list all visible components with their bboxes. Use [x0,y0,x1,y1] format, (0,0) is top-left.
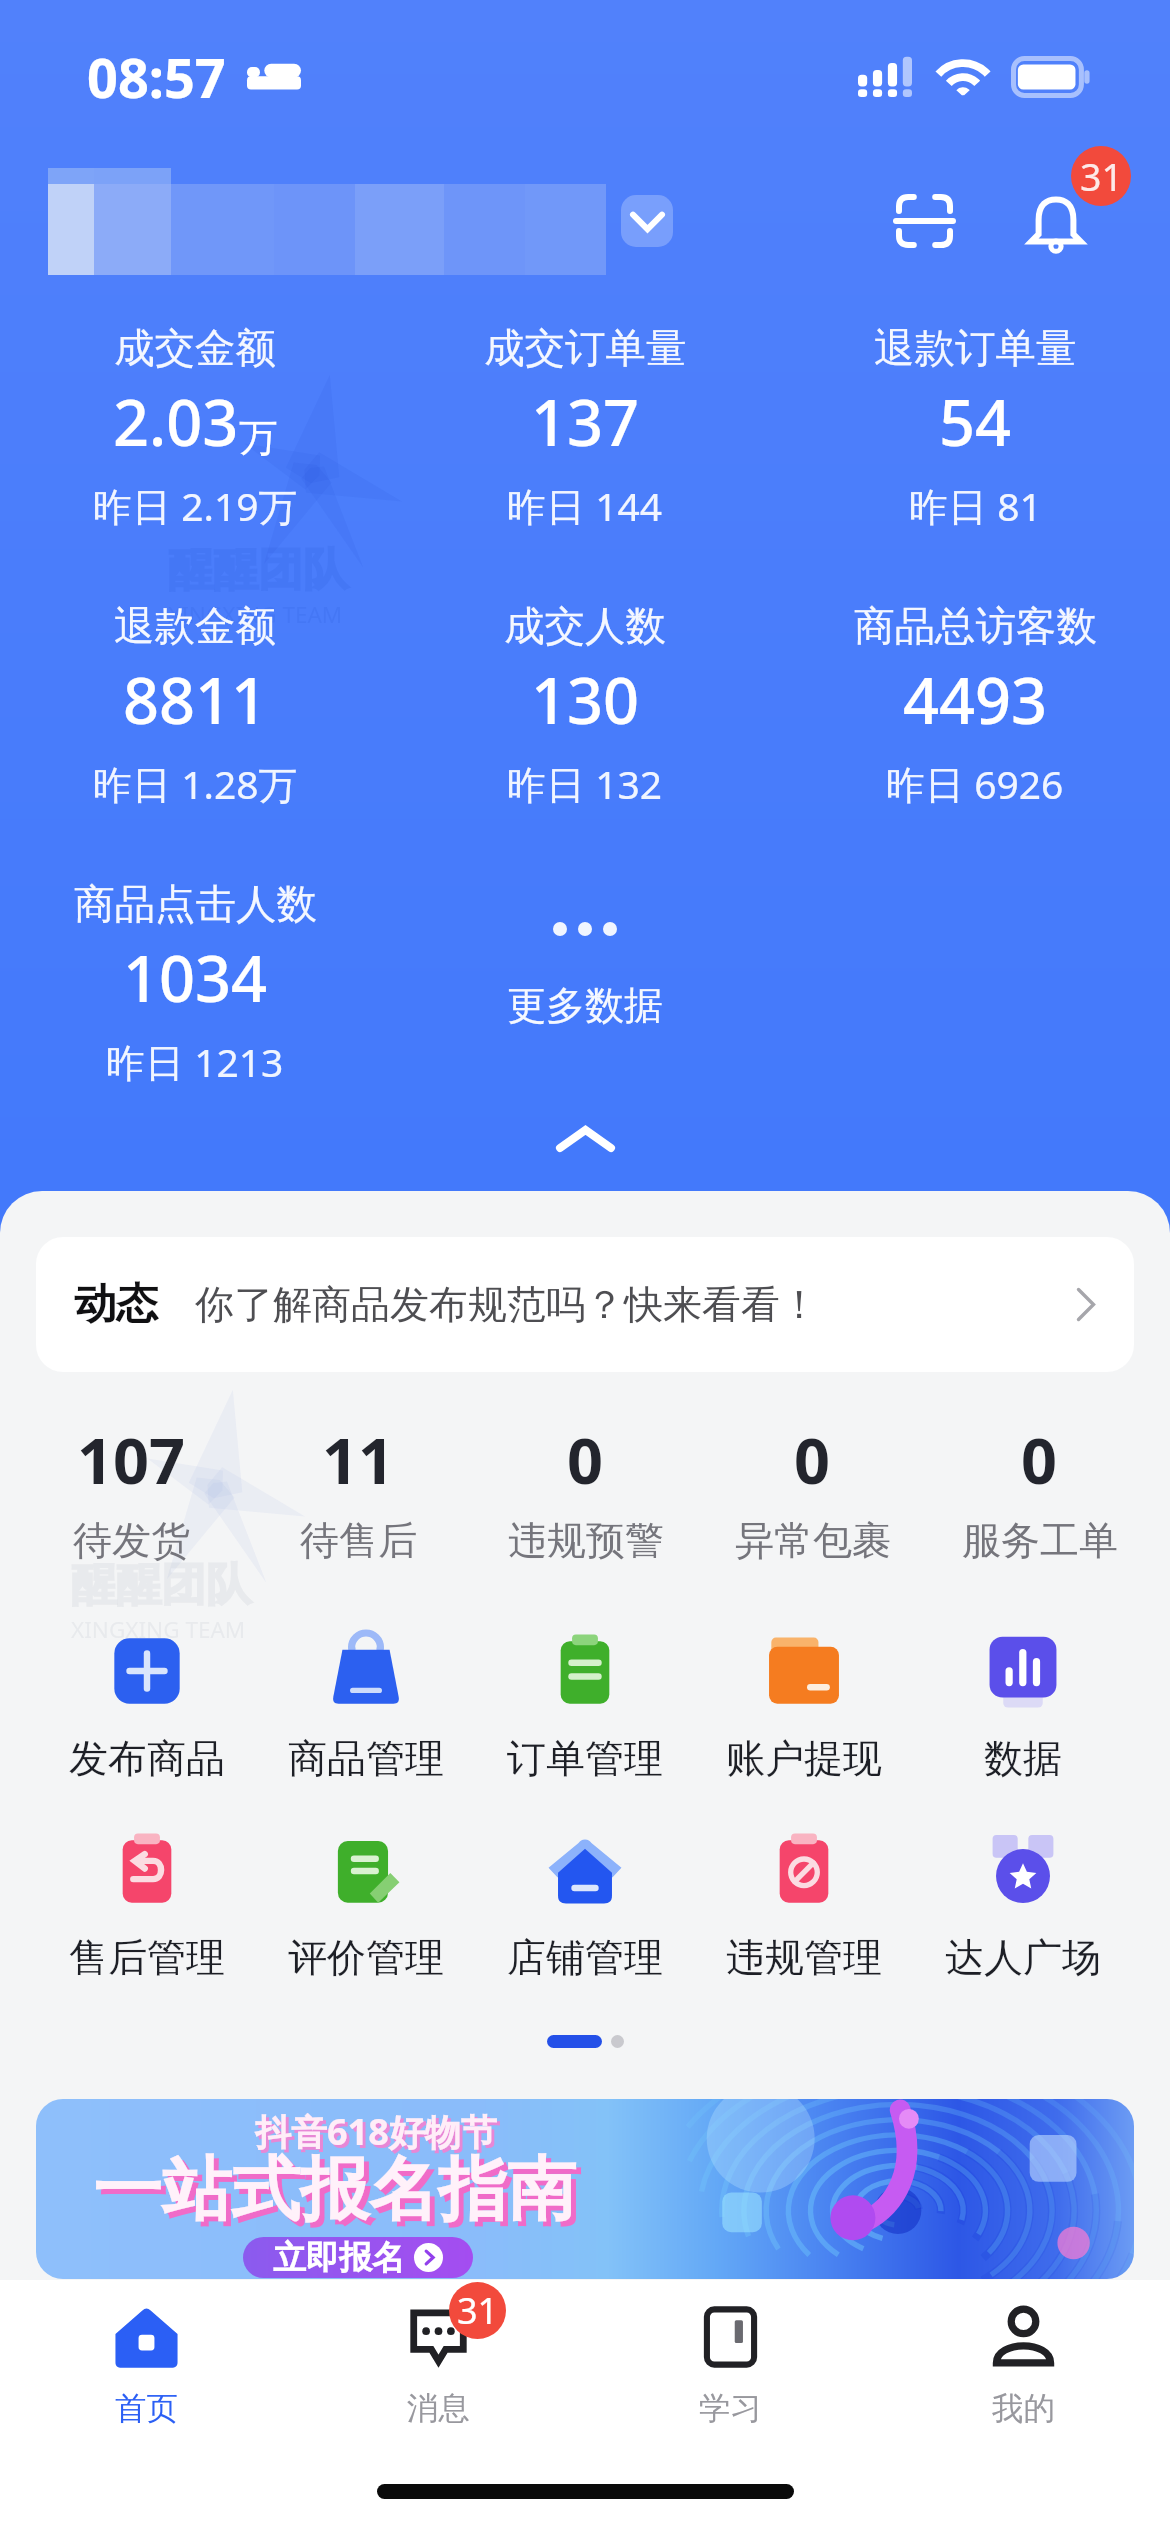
button[interactable]: 动态 [36,1237,1134,1372]
staticText: 一站式报名指南 [93,2147,576,2234]
button[interactable]: 成交订单量 [390,288,780,566]
staticText: 107 [77,1417,186,1503]
staticText: 昨日 6926 [886,757,1064,810]
button[interactable]: 退款金额 [0,566,390,844]
staticText: 你了解商品发布规范吗？快来看看！ [195,1280,819,1329]
button[interactable]: 抖音618好物节 [36,2099,1134,2279]
staticText: 退款订单量 [874,323,1077,374]
staticText: 达人广场 [945,1933,1101,1982]
staticText: 更多数据 [507,981,663,1030]
staticText: 54 [939,379,1012,465]
staticText: 店铺管理 [507,1933,663,1982]
staticText: 137 [531,379,640,465]
staticText: 8811 [123,657,268,743]
staticText: 抖音618好物节 [258,2110,500,2159]
staticText: 动态 [74,1278,158,1331]
staticText: 昨日 2.19万 [93,479,298,532]
button[interactable]: 发布商品 [38,1633,256,1832]
button[interactable]: 0 [472,1411,699,1571]
button[interactable]: 账户提现 [694,1633,913,1832]
staticText: 学习 [699,2389,762,2429]
button[interactable]: 107 [17,1411,245,1571]
staticText: 0 [567,1417,604,1503]
button[interactable]: Scan code [867,164,981,278]
staticText: 抖音618好物节 [255,2107,497,2156]
button[interactable]: 首页 [0,2280,292,2451]
staticText: 08:57 [87,40,226,114]
button[interactable]: 评价管理 [256,1832,475,2031]
staticText: 130 [531,657,640,743]
staticText: 售后管理 [69,1933,225,1982]
staticText: 待售后 [300,1516,417,1565]
staticText: 11 [322,1417,395,1503]
staticText: 异常包裹 [735,1516,891,1565]
staticText: 0 [1021,1417,1058,1503]
staticText: 首页 [115,2389,178,2429]
staticText: 万 [239,413,278,462]
staticText: 醒醒团队 [71,1557,251,1614]
button[interactable]: 违规管理 [694,1832,913,2031]
staticText: XINGXING TEAM [71,1614,246,1645]
button[interactable]: 0 [926,1411,1153,1571]
staticText: 1034 [123,935,268,1021]
staticText: 商品点击人数 [74,879,317,930]
button[interactable]: 商品总访客数 [780,566,1170,844]
staticText: 违规管理 [726,1933,882,1982]
staticText: 发布商品 [69,1734,225,1783]
button[interactable]: 11 [245,1411,472,1571]
staticText: 数据 [984,1734,1062,1783]
button[interactable]: 店铺管理 [475,1832,694,2031]
button[interactable]: 更多数据 [441,910,729,1042]
button[interactable]: 达人广场 [913,1832,1132,2031]
staticText: 我的 [992,2389,1055,2429]
button[interactable]: 退款订单量 [780,288,1170,566]
button[interactable]: 数据 [913,1633,1132,1832]
button[interactable]: 0 [699,1411,926,1571]
button[interactable]: Collapse [522,1122,648,1155]
button[interactable]: 我的 [877,2280,1170,2451]
staticText: 商品总访客数 [854,601,1097,652]
staticText: 2.03 [113,379,239,465]
staticText: 昨日 81 [909,479,1042,532]
button[interactable]: Notifications [999,164,1113,278]
staticText: 订单管理 [507,1734,663,1783]
staticText: 昨日 1213 [106,1035,284,1088]
button[interactable]: Switch shop [621,195,673,247]
staticText: 待发货 [73,1516,190,1565]
staticText: 昨日 144 [507,479,663,532]
button[interactable]: 商品管理 [256,1633,475,1832]
staticText: 消息 [407,2389,470,2429]
button[interactable]: 售后管理 [38,1832,256,2031]
button[interactable]: 成交金额 [0,288,390,566]
staticText: 评价管理 [288,1933,444,1982]
staticText: 服务工单 [962,1516,1118,1565]
staticText: 31 [457,2286,499,2335]
staticText: 一站式报名指南 [98,2152,581,2239]
staticText: 退款金额 [114,601,276,652]
staticText: 违规预警 [508,1516,664,1565]
staticText: 成交人数 [504,601,666,652]
staticText: XINGXING TEAM [168,599,343,630]
button[interactable]: 成交人数 [390,566,780,844]
staticText: 商品管理 [288,1734,444,1783]
button[interactable]: 31 [292,2280,584,2451]
staticText: 4493 [903,657,1048,743]
staticText: 31 [1080,151,1123,202]
staticText: 昨日 1.28万 [93,757,298,810]
staticText: 账户提现 [726,1734,882,1783]
button[interactable]: 订单管理 [475,1633,694,1832]
staticText: 立即报名 [273,2237,405,2278]
staticText: 成交订单量 [484,323,687,374]
button[interactable]: 学习 [584,2280,877,2451]
staticText: 成交金额 [114,323,276,374]
staticText: 昨日 132 [507,757,663,810]
button[interactable]: 商品点击人数 [0,844,390,1122]
staticText: 0 [794,1417,831,1503]
